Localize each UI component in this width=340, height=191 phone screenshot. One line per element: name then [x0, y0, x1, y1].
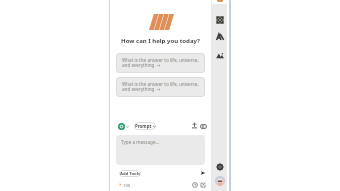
button[interactable]: Prompt — [134, 122, 156, 130]
button[interactable]: History — [192, 182, 198, 188]
staticText: Add Tools — [120, 171, 140, 177]
button[interactable]: Send message — [200, 170, 206, 176]
button[interactable]: Translate — [216, 33, 224, 41]
button[interactable]: Add Tools — [119, 170, 141, 177]
button[interactable]: What is the answer to life, universe, an… — [116, 77, 205, 97]
button[interactable]: Type a message... — [116, 135, 205, 165]
staticText: What is the answer to life, universe, an… — [122, 57, 200, 68]
button[interactable]: Model — [118, 123, 125, 130]
staticText: What is the answer to life, universe, an… — [122, 81, 200, 92]
button[interactable]: Toggle panel — [200, 123, 207, 130]
button[interactable]: Images — [216, 51, 224, 59]
staticText: 100 — [123, 183, 131, 189]
staticText: How can I help you today? — [121, 37, 200, 45]
button[interactable]: Chat — [212, 0, 227, 4]
button[interactable]: Settings — [216, 163, 224, 171]
button[interactable]: What is the answer to life, universe, an… — [116, 53, 205, 73]
button[interactable]: Attach file — [191, 122, 198, 129]
button[interactable]: Profile — [215, 176, 225, 186]
button[interactable]: Focus mode — [216, 16, 224, 24]
button[interactable]: New chat — [200, 182, 206, 188]
staticText: Prompt — [135, 123, 152, 129]
staticText: Type a message... — [121, 139, 160, 145]
